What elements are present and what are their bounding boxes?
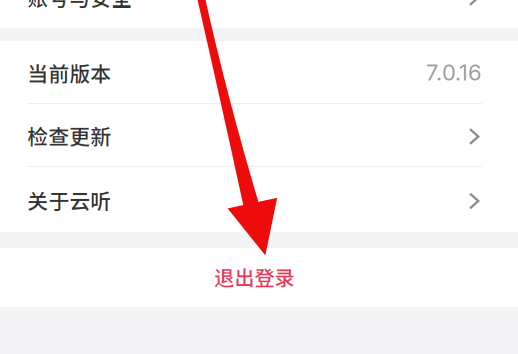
staticText: 7.0.16 — [426, 59, 482, 86]
staticText: 账号与安全 — [27, 0, 132, 12]
staticText: 退出登录 — [214, 262, 294, 291]
button[interactable]: 检查更新 — [0, 104, 518, 166]
button[interactable]: 退出登录 — [0, 248, 518, 307]
staticText: 检查更新 — [27, 120, 111, 150]
button[interactable]: 账号与安全 — [0, 0, 518, 28]
staticText: 当前版本 — [27, 57, 111, 87]
button[interactable]: 当前版本 — [0, 41, 518, 103]
button[interactable]: 关于云听 — [0, 167, 518, 232]
staticText: 关于云听 — [27, 185, 111, 215]
